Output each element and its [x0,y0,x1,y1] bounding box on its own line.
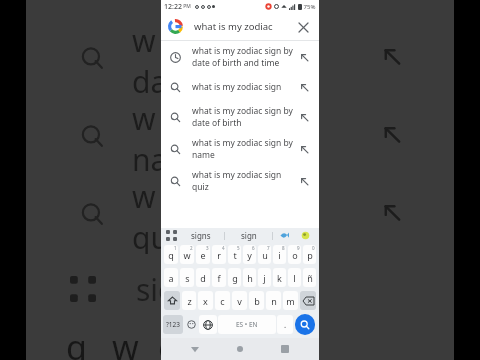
staticText: what is my zodiac [194,20,294,33]
button[interactable]: r [212,245,226,264]
staticText: k [277,272,282,284]
staticText: s [185,272,190,284]
staticText: 2 [190,245,193,251]
staticText: x [203,295,208,307]
button[interactable]: ES • EN [218,315,276,334]
button[interactable]: what is my zodiac sign by [161,133,319,165]
button[interactable]: Emoji fish [273,228,295,243]
staticText: ES • EN [236,320,258,329]
staticText: c [220,295,225,307]
staticText: 1 [174,245,177,251]
button[interactable]: Insert suggestion [294,107,314,127]
staticText: name [192,149,215,161]
button[interactable]: e [196,245,210,264]
button[interactable]: Keyboard menu [166,230,177,241]
button[interactable]: ?123 [163,315,183,334]
staticText: q [168,249,174,261]
staticText: what is my zodiac sign by [192,137,293,149]
button[interactable]: x [198,291,213,310]
button[interactable]: y [243,245,256,264]
staticText: 12:22 [164,2,182,12]
button[interactable]: q [164,245,178,264]
button[interactable]: Insert suggestion [294,47,314,67]
button[interactable]: c [215,291,230,310]
button[interactable]: p [303,245,316,264]
button[interactable]: n [266,291,281,310]
button[interactable]: h [243,268,256,287]
button[interactable]: w [180,245,194,264]
staticText: w [112,324,158,360]
button[interactable]: Home [229,338,251,360]
button[interactable]: ñ [303,268,316,287]
staticText: i [278,249,281,261]
button[interactable]: l [288,268,301,287]
button[interactable]: what is my zodiac sign [161,73,319,101]
button[interactable]: u [258,245,271,264]
staticText: 4 [222,245,225,251]
button[interactable]: what is my zodiac sign by [161,101,319,133]
button[interactable]: t [228,245,241,264]
staticText: 7 [267,245,270,251]
staticText: sign [241,230,257,241]
button[interactable]: Clear [294,18,312,36]
staticText: what is my zodiac sign by [192,45,293,57]
button[interactable]: what is my zodiac sign [161,165,319,197]
button[interactable]: m [283,291,298,310]
button[interactable]: Emoji [183,315,199,334]
button[interactable]: Insert suggestion [294,77,314,97]
staticText: 9 [297,245,300,251]
staticText: 6 [252,245,255,251]
staticText: PM [182,3,191,10]
button[interactable]: Backspace [300,291,316,310]
staticText: t [233,249,237,261]
staticText: d [200,272,206,284]
staticText: . [284,319,287,330]
staticText: y [247,249,252,261]
button[interactable]: f [212,268,226,287]
staticText: 8 [282,245,285,251]
button[interactable]: Emoji sticker [295,228,315,243]
staticText: na [132,139,168,176]
staticText: sig [136,269,177,310]
button[interactable]: signs [177,228,224,243]
button[interactable]: Search [295,314,315,335]
staticText: g [232,272,238,284]
staticText: b [254,295,260,307]
button[interactable]: . [277,315,293,334]
staticText: u [262,249,268,261]
button[interactable]: s [180,268,194,287]
staticText: what is my zodiac sign [192,81,282,93]
button[interactable]: what is my zodiac sign by [161,41,319,73]
button[interactable]: sign [225,228,272,243]
staticText: q [66,324,112,360]
button[interactable]: Insert suggestion [294,171,314,191]
button[interactable]: k [273,268,286,287]
button[interactable]: v [232,291,247,310]
button[interactable]: Recents [274,338,296,360]
button[interactable]: Insert suggestion [294,139,314,159]
button[interactable]: d [196,268,210,287]
staticText: p [307,249,313,261]
staticText: v [237,295,242,307]
staticText: signs [191,230,211,241]
staticText: r [217,249,221,261]
button[interactable]: Back [184,338,206,360]
button[interactable]: j [258,268,271,287]
staticText: 0 [312,245,315,251]
button[interactable]: o [288,245,301,264]
button[interactable]: z [182,291,196,310]
staticText: quiz [192,181,209,193]
button[interactable]: g [228,268,241,287]
staticText: e [200,249,206,261]
button[interactable]: i [273,245,286,264]
staticText: date of birth [192,117,242,129]
staticText: w [183,249,191,261]
button[interactable]: b [249,291,264,310]
staticText: m [286,295,295,307]
button[interactable]: a [164,268,178,287]
staticText: 5 [237,245,240,251]
button[interactable]: Change language [199,315,217,334]
button[interactable]: Shift [164,291,180,310]
staticText: j [263,272,266,284]
staticText: l [293,272,296,284]
